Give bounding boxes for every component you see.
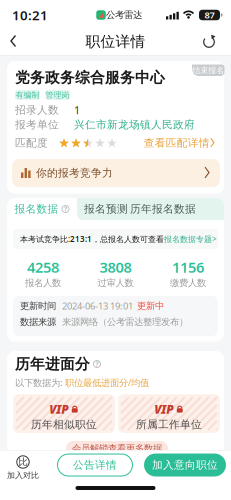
staticText: 2024-06-13 19:01: [62, 300, 133, 312]
staticText: VIP: [49, 401, 68, 417]
staticText: 以下数据为:: [15, 376, 65, 389]
staticText: 结束报名: [192, 65, 224, 75]
staticText: 职位最低进面分/均值: [65, 376, 149, 389]
staticText: 会员解锁查看更多数据: [72, 443, 162, 454]
staticText: 公考雷达: [106, 9, 142, 21]
staticText: ?: [95, 360, 98, 368]
staticText: 4258: [27, 257, 59, 277]
button[interactable]: 查看匹配详情: [144, 136, 215, 149]
staticText: 查看匹配详情: [144, 136, 210, 149]
staticText: 匹配度: [15, 136, 48, 149]
button[interactable]: 报名数据: [7, 198, 77, 220]
staticText: 历年报名数据: [130, 202, 196, 215]
staticText: 你的报考竞争力: [36, 166, 113, 179]
staticText: 报名数据专题>: [164, 234, 217, 244]
staticText: 加入对比: [7, 470, 39, 480]
staticText: 1156: [172, 257, 204, 277]
staticText: 缴费人数: [170, 277, 206, 289]
button[interactable]: VIP: [13, 394, 115, 433]
staticText: 本考试竞争比:213:1，总报名人数可查看: [20, 234, 164, 244]
staticText: 历年相似职位: [31, 418, 97, 431]
staticText: 10:21: [12, 6, 48, 24]
staticText: 报名人数: [25, 277, 61, 289]
staticText: 报名数据: [14, 202, 58, 215]
staticText: 来源网络（公考雷达整理发布）: [62, 316, 188, 328]
staticText: 有编制: [15, 90, 39, 100]
button[interactable]: Refresh: [202, 34, 215, 48]
staticText: 数据来源: [20, 316, 56, 328]
staticText: 1: [74, 103, 80, 117]
staticText: 公告详情: [73, 458, 117, 471]
button[interactable]: 兴仁市新龙场镇人民政府: [74, 118, 195, 131]
staticText: 兴仁市新龙场镇人民政府: [74, 118, 195, 131]
button[interactable]: 报名数据专题>: [164, 234, 217, 244]
button[interactable]: Back: [11, 35, 19, 47]
button[interactable]: 报名预测: [78, 198, 134, 220]
staticText: 更新时间: [20, 300, 56, 312]
staticText: 管理岗: [45, 90, 69, 100]
button[interactable]: 你的报考竞争力: [12, 159, 220, 187]
staticText: 报名预测: [84, 202, 128, 215]
staticText: 比: [18, 456, 27, 468]
button[interactable]: 会员解锁查看更多数据: [66, 441, 168, 456]
staticText: 党务政务综合服务中心: [15, 68, 165, 86]
staticText: 报考单位: [15, 118, 59, 131]
staticText: 所属工作单位: [136, 418, 202, 431]
button[interactable]: 历年报名数据: [123, 198, 203, 220]
staticText: ?: [64, 205, 67, 213]
staticText: 历年进面分: [15, 355, 90, 373]
staticText: 过审人数: [97, 277, 133, 289]
button[interactable]: 公告详情: [57, 453, 133, 476]
staticText: 更新中: [137, 300, 164, 312]
button[interactable]: VIP: [118, 394, 220, 433]
staticText: 3808: [99, 257, 131, 277]
staticText: 87: [204, 9, 214, 21]
staticText: 加入意向职位: [152, 458, 218, 471]
button[interactable]: 比: [7, 455, 39, 480]
button[interactable]: 加入意向职位: [144, 453, 226, 476]
staticText: 招录人数: [15, 103, 59, 116]
staticText: 职位详情: [85, 32, 145, 50]
staticText: VIP: [154, 401, 173, 417]
